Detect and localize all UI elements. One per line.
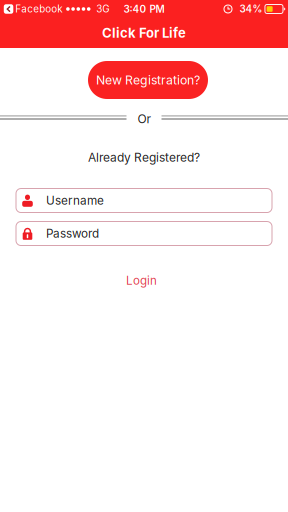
staticText: Or [137, 112, 151, 126]
staticText: 34% [239, 3, 262, 15]
button[interactable]: Login [119, 266, 164, 294]
staticText: 3G [96, 3, 109, 15]
staticText: Username [46, 193, 104, 208]
button[interactable]: New Registration? [88, 61, 208, 99]
button[interactable]: Back to Facebook [0, 3, 62, 15]
staticText: New Registration? [96, 73, 200, 87]
staticText: Login [126, 273, 157, 287]
button[interactable]: Username [16, 188, 272, 212]
staticText: Already Registered? [88, 150, 200, 164]
staticText: Password [46, 226, 99, 241]
button[interactable]: Password [16, 221, 272, 245]
staticText: Facebook [15, 3, 62, 15]
staticText: Click For Life [102, 25, 186, 41]
staticText: 3:40 PM [123, 3, 164, 15]
